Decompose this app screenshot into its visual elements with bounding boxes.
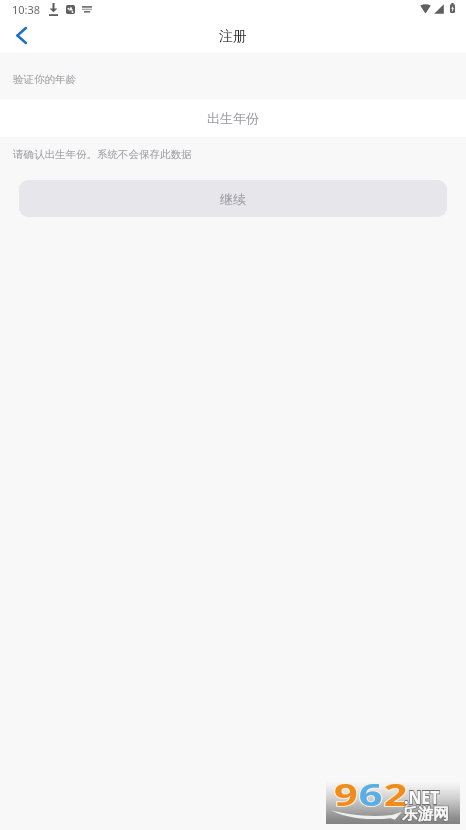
staticText: 乐游网 — [402, 805, 449, 824]
staticText: 出生年份 — [207, 110, 259, 126]
staticText: 9 — [334, 774, 359, 815]
staticText: 2 — [384, 774, 408, 815]
button[interactable]: Back — [0, 21, 42, 53]
staticText: 验证你的年龄 — [13, 73, 76, 86]
staticText: 2 — [384, 774, 408, 815]
staticText: .NET — [404, 785, 440, 810]
staticText: .NET — [404, 785, 440, 810]
staticText: 6 — [359, 774, 384, 815]
staticText: 10:38 — [12, 2, 41, 17]
staticText: 继续 — [220, 191, 246, 207]
staticText: 注册 — [219, 28, 247, 46]
staticText: 请确认出生年份。系统不会保存此数据 — [13, 148, 192, 161]
button[interactable]: 继续 — [19, 180, 447, 217]
staticText: 9 — [334, 774, 359, 815]
staticText: 乐游网 — [402, 805, 449, 824]
staticText: 6 — [359, 774, 384, 815]
button[interactable]: 出生年份 — [0, 99, 466, 137]
